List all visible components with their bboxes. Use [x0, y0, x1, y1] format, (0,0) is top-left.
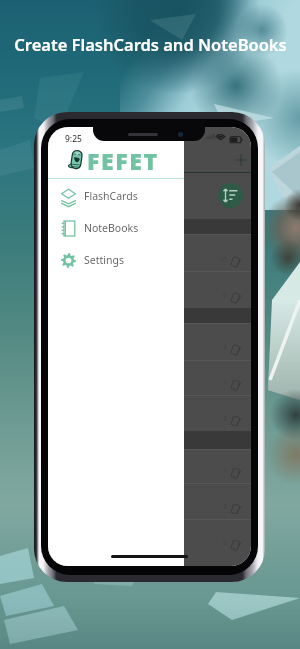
staticText: NoteBooks — [84, 221, 139, 235]
button[interactable]: FlashCards — [48, 180, 184, 212]
button[interactable]: Add — [230, 149, 251, 171]
button[interactable]: 2 — [48, 483, 251, 519]
staticText: 9:25 — [65, 133, 82, 145]
button[interactable]: Settings — [48, 244, 184, 276]
staticText: FlashCards — [84, 189, 138, 203]
button[interactable]: 3 — [48, 323, 251, 360]
button[interactable]: 9 — [48, 519, 251, 555]
staticText: Create FlashCards and NoteBooks — [14, 33, 287, 55]
button[interactable]: 2 — [48, 395, 251, 431]
staticText: Settings — [84, 253, 124, 267]
button[interactable]: 1 — [48, 360, 251, 395]
button[interactable]: 6 — [48, 271, 251, 308]
button[interactable]: 1 — [48, 449, 251, 483]
button[interactable]: 10 — [48, 234, 251, 272]
staticText: FEFET — [87, 145, 159, 176]
button[interactable]: NoteBooks — [48, 212, 184, 244]
button[interactable]: Sort — [218, 183, 243, 208]
